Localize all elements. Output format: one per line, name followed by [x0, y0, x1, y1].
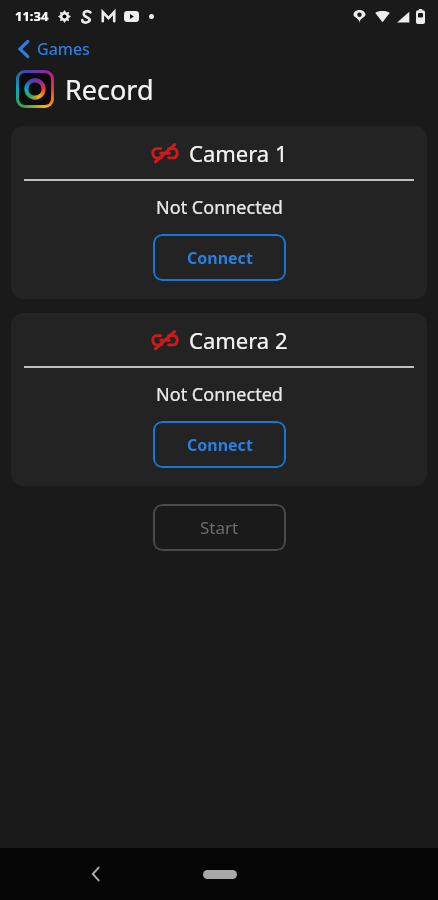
- staticText: Not Connected: [156, 382, 283, 407]
- staticText: Games: [37, 38, 90, 60]
- button[interactable]: Connect: [153, 421, 286, 468]
- staticText: Camera 1: [189, 138, 288, 168]
- button[interactable]: Connect: [153, 234, 286, 281]
- staticText: Connect: [187, 434, 253, 456]
- button[interactable]: Camera 1: [11, 126, 427, 299]
- staticText: Not Connected: [156, 195, 283, 220]
- staticText: Connect: [187, 247, 253, 269]
- button[interactable]: Camera 2: [11, 313, 427, 486]
- staticText: Record: [65, 71, 154, 108]
- button[interactable]: Start: [153, 504, 286, 551]
- button[interactable]: Home: [190, 857, 250, 891]
- button[interactable]: Back: [78, 857, 112, 891]
- button[interactable]: Games: [12, 34, 96, 64]
- staticText: Camera 2: [189, 325, 288, 355]
- staticText: Start: [200, 516, 239, 539]
- staticText: 11:34: [15, 7, 49, 25]
